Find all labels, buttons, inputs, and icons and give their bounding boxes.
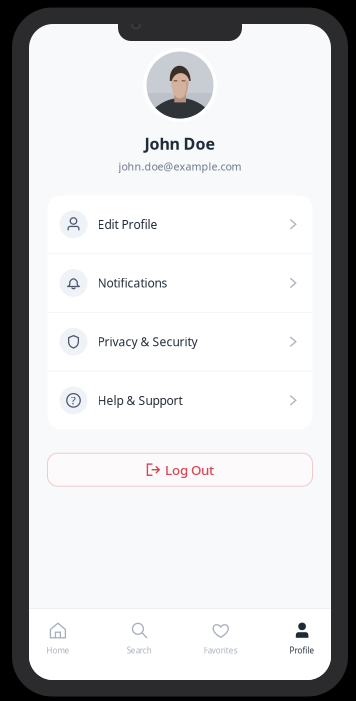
staticText: Help & Support <box>97 392 182 408</box>
staticText: Search <box>127 645 152 656</box>
staticText: Home <box>46 645 69 656</box>
staticText: John Doe <box>144 133 215 154</box>
button[interactable]: Privacy & Security <box>47 313 312 370</box>
button[interactable]: Notifications <box>47 254 312 312</box>
staticText: Log Out <box>165 461 214 479</box>
staticText: Favorites <box>204 645 238 656</box>
button[interactable]: Edit Profile <box>47 195 312 253</box>
button[interactable]: ? <box>47 371 312 429</box>
button[interactable]: Profile <box>261 609 343 680</box>
staticText: john.doe@example.com <box>118 159 241 173</box>
button[interactable]: Favorites <box>180 609 261 680</box>
staticText: ? <box>71 393 76 407</box>
staticText: Profile <box>290 645 315 656</box>
staticText: Notifications <box>97 275 167 291</box>
button[interactable]: Home <box>17 609 99 680</box>
button[interactable]: Search <box>99 609 180 680</box>
staticText: Edit Profile <box>97 216 157 232</box>
staticText: Privacy & Security <box>97 334 197 350</box>
button[interactable]: Log Out <box>47 453 312 486</box>
